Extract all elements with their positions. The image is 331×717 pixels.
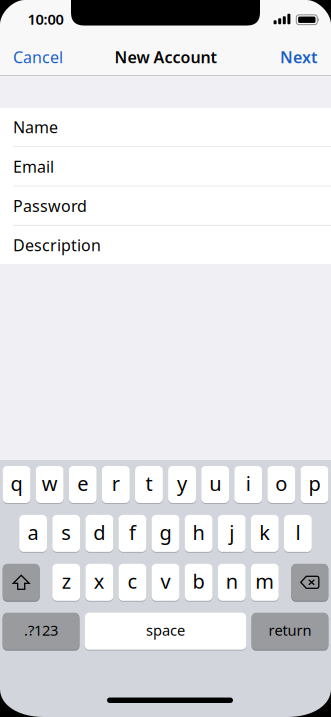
staticText: r [112, 470, 120, 497]
button[interactable]: q [3, 466, 30, 503]
staticText: g [159, 519, 171, 545]
button[interactable]: Delete [291, 564, 328, 601]
button[interactable]: y [168, 466, 196, 503]
button[interactable]: h [185, 515, 212, 552]
staticText: New Account [114, 46, 216, 68]
button[interactable]: r [102, 466, 130, 503]
button[interactable]: Email [0, 147, 331, 186]
staticText: a [28, 519, 39, 545]
staticText: w [42, 470, 58, 497]
staticText: 10:00 [27, 9, 63, 29]
staticText: q [10, 470, 22, 497]
button[interactable]: Name [0, 108, 331, 146]
button[interactable]: a [19, 515, 47, 552]
button[interactable]: k [251, 515, 279, 552]
staticText: t [145, 470, 152, 497]
staticText: x [94, 568, 105, 594]
button[interactable]: l [284, 515, 312, 552]
button[interactable]: Cancel [0, 39, 63, 75]
button[interactable]: s [52, 515, 80, 552]
button[interactable]: Password [0, 187, 331, 225]
button[interactable]: m [251, 564, 279, 601]
staticText: i [246, 470, 251, 497]
staticText: Next [280, 46, 317, 68]
staticText: p [308, 470, 320, 497]
button[interactable]: Next [280, 39, 331, 75]
staticText: o [275, 470, 287, 497]
staticText: space [146, 620, 185, 640]
staticText: .?123 [24, 620, 58, 640]
button[interactable]: g [152, 515, 179, 552]
button[interactable]: n [218, 564, 246, 601]
staticText: Email [13, 156, 54, 177]
button[interactable]: w [36, 466, 63, 503]
button[interactable]: z [52, 564, 80, 601]
button[interactable]: f [118, 515, 146, 552]
button[interactable]: Description [0, 226, 331, 264]
staticText: Password [13, 195, 87, 216]
staticText: h [193, 519, 205, 545]
staticText: f [129, 519, 136, 545]
button[interactable]: c [118, 564, 146, 601]
button[interactable]: j [218, 515, 246, 552]
staticText: v [160, 568, 170, 594]
button[interactable]: space [85, 613, 246, 650]
button[interactable]: return [251, 613, 328, 650]
button[interactable]: i [234, 466, 262, 503]
staticText: s [61, 519, 71, 545]
staticText: u [209, 470, 221, 497]
staticText: e [77, 470, 88, 497]
button[interactable]: t [135, 466, 163, 503]
staticText: l [295, 519, 300, 545]
staticText: z [62, 568, 71, 594]
button[interactable]: Shift [3, 564, 40, 601]
staticText: Name [13, 116, 58, 138]
button[interactable]: u [201, 466, 229, 503]
button[interactable]: d [85, 515, 113, 552]
button[interactable]: b [185, 564, 212, 601]
staticText: b [193, 568, 205, 594]
button[interactable]: x [85, 564, 113, 601]
staticText: Description [13, 234, 101, 256]
staticText: j [229, 519, 234, 545]
button[interactable]: .?123 [3, 613, 79, 650]
staticText: Cancel [13, 46, 63, 68]
button[interactable]: v [152, 564, 179, 601]
staticText: c [127, 568, 137, 594]
button[interactable]: o [267, 466, 295, 503]
button[interactable]: p [301, 466, 328, 503]
staticText: n [226, 568, 238, 594]
staticText: return [268, 620, 311, 640]
staticText: m [255, 568, 274, 594]
staticText: d [93, 519, 105, 545]
button[interactable]: e [69, 466, 97, 503]
staticText: k [259, 519, 270, 545]
staticText: y [177, 470, 187, 497]
